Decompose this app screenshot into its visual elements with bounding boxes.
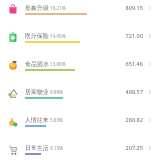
staticText: 5.63% [50,117,63,123]
staticText: 居家物业 [25,88,49,95]
button[interactable]: 居家物业 [0,84,160,112]
staticText: 医疗保险 [25,32,49,39]
staticText: 9.99% [50,89,63,95]
staticText: 809.15 [105,4,143,12]
staticText: 498.57 [105,88,143,96]
button[interactable]: 食品酒水 [0,56,160,84]
button[interactable]: 人情往来 [0,112,160,140]
staticText: 日常生活 [25,144,49,151]
staticText: 食品酒水 [25,60,49,67]
staticText: 207.25 [105,144,143,152]
staticText: 721.00 [105,32,143,40]
staticText: 16.21% [50,5,66,11]
staticText: 14.45% [50,33,66,39]
button[interactable]: 形象升级 [0,0,160,28]
staticText: 280.82 [105,116,143,124]
staticText: 651.46 [105,60,143,68]
staticText: 4.15% [50,145,63,151]
staticText: 13.06% [50,61,66,67]
button[interactable]: 医疗保险 [0,28,160,56]
staticText: 人情往来 [25,116,49,123]
staticText: 形象升级 [25,4,49,11]
button[interactable]: 日常生活 [0,140,160,160]
